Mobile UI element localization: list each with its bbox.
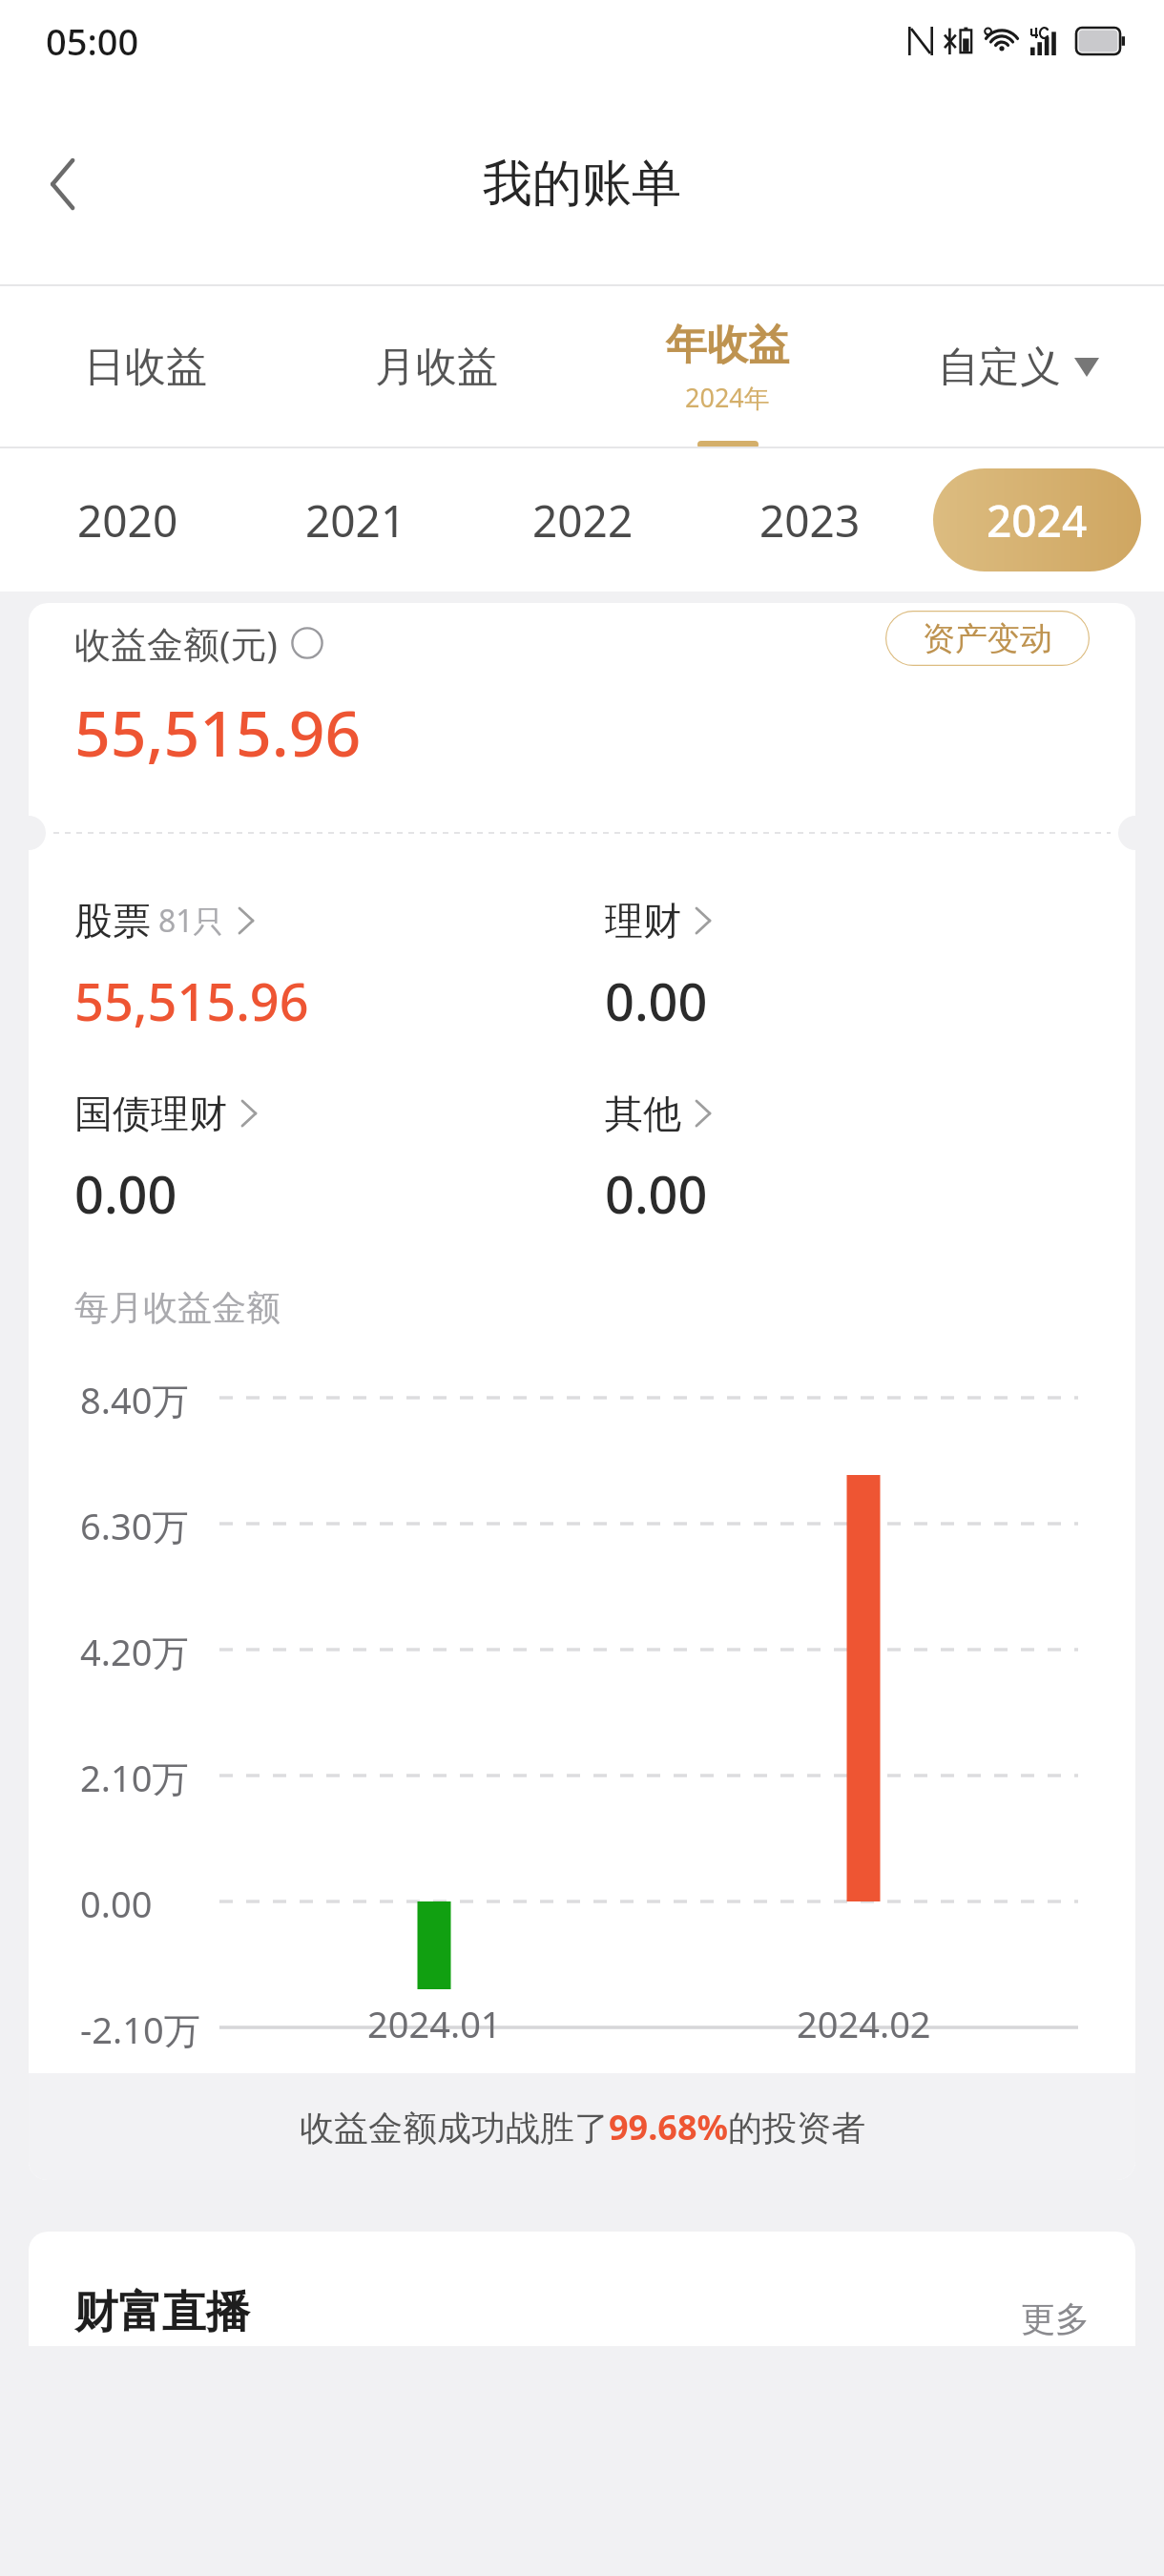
staticText: 理财	[605, 897, 681, 945]
button[interactable]: 财富直播	[29, 2232, 1135, 2346]
button[interactable]: 股票	[74, 897, 605, 1036]
staticText: 8.40万	[80, 1375, 189, 1421]
staticText: 2024.01	[367, 1999, 502, 2048]
staticText: 2.10万	[80, 1753, 189, 1798]
button[interactable]: 其他	[605, 1090, 1135, 1229]
staticText: 国债理财	[74, 1090, 227, 1137]
staticText: 55,515.96	[74, 966, 309, 1036]
button[interactable]: 理财	[605, 897, 1135, 1036]
staticText: 0.00	[605, 1158, 708, 1229]
staticText: 0.00	[605, 966, 708, 1036]
button[interactable]: 资产变动	[885, 611, 1090, 666]
staticText: 财富直播	[74, 2285, 250, 2340]
button[interactable]: 国债理财	[74, 1090, 605, 1229]
staticText: 0.00	[80, 1879, 153, 1924]
staticText: 股票	[74, 897, 151, 945]
staticText: 2024年	[685, 380, 770, 415]
staticText: 更多	[1021, 2297, 1090, 2340]
button[interactable]: 2021	[251, 468, 460, 571]
staticText: 6.30万	[80, 1501, 189, 1547]
button[interactable]: 2024	[933, 468, 1141, 571]
staticText: 05:00	[46, 16, 139, 66]
staticText: 自定义	[938, 342, 1061, 393]
button[interactable]: 日收益	[0, 286, 291, 448]
staticText: 0.00	[74, 1158, 177, 1229]
staticText: 55,515.96	[74, 689, 362, 775]
staticText: 2021	[305, 490, 406, 551]
staticText: 年收益	[666, 320, 789, 371]
button[interactable]: 2023	[706, 468, 914, 571]
button[interactable]: Back	[21, 142, 105, 226]
staticText: 81只	[158, 900, 224, 942]
staticText: 2024	[987, 490, 1088, 551]
button[interactable]: 2020	[23, 468, 232, 571]
button[interactable]: 月收益	[291, 286, 582, 448]
button[interactable]: 年收益	[582, 286, 873, 448]
staticText: -2.10万	[80, 2005, 200, 2050]
staticText: 收益金额(元)	[74, 618, 278, 668]
button[interactable]: 2022	[479, 468, 687, 571]
staticText: 收益金额成功战胜了99.68%的投资者	[300, 2104, 865, 2150]
button[interactable]: 自定义	[873, 286, 1164, 448]
button[interactable]: 收益金额(元)	[74, 618, 323, 668]
staticText: 每月收益金额	[74, 1286, 281, 1329]
staticText: 月收益	[375, 342, 498, 393]
staticText: 4.20万	[80, 1627, 189, 1672]
staticText: 我的账单	[483, 153, 681, 216]
staticText: 2024.02	[797, 1999, 931, 2048]
staticText: 其他	[605, 1090, 681, 1137]
staticText: 2022	[532, 490, 634, 551]
staticText: 2023	[759, 490, 861, 551]
staticText: 日收益	[84, 342, 207, 393]
staticText: 资产变动	[923, 618, 1052, 659]
staticText: 2020	[77, 490, 178, 551]
